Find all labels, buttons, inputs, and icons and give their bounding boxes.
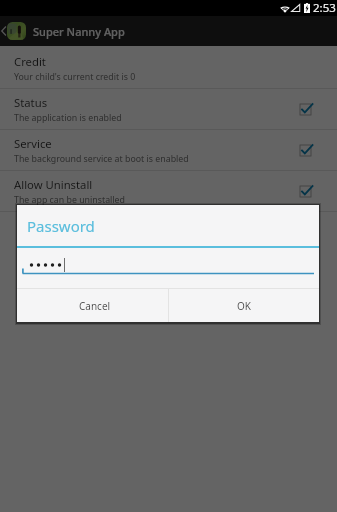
button[interactable]: Service [0,130,337,171]
staticText: Service [14,136,52,151]
staticText: Allow Uninstall [14,177,93,192]
staticText: Super Nanny App [33,24,125,39]
button[interactable]: OK [169,289,319,322]
button[interactable]: Status [0,89,337,130]
staticText: Password [27,216,95,236]
staticText: Status [14,95,48,110]
button[interactable]: Cancel [17,289,168,322]
staticText: OK [237,299,251,313]
staticText: The background service at boot is enable… [14,153,189,165]
other: Navigate up [0,25,7,37]
button[interactable]: Allow Uninstall [0,171,337,212]
button[interactable]: Credit [0,48,337,89]
staticText: Cancel [79,299,111,313]
staticText: Credit [14,54,46,69]
staticText: 2:53 [313,0,336,16]
staticText: The application is enabled [14,112,122,124]
staticText: The app can be uninstalled [14,194,125,206]
button[interactable]: Navigate up [0,16,337,46]
staticText: Your child's current credit is 0 [14,71,136,83]
